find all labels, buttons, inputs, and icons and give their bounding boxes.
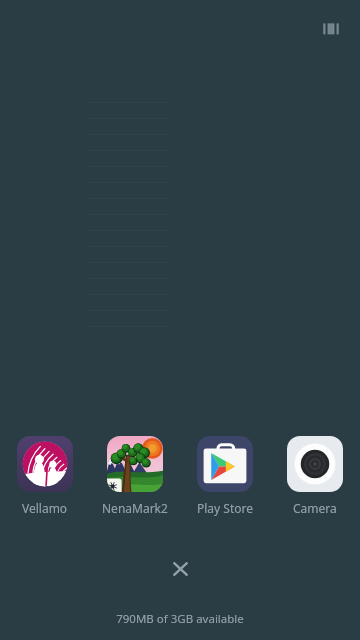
button[interactable]: Recent apps — [322, 22, 340, 36]
button[interactable]: NenaMark2 — [101, 436, 169, 516]
button[interactable]: Play Store — [191, 436, 259, 516]
staticText: 790MB of 3GB available — [0, 611, 360, 627]
staticText: Play Store — [197, 500, 253, 516]
button[interactable]: Clear all — [158, 547, 202, 591]
button[interactable]: Camera — [281, 436, 349, 516]
button[interactable]: Vellamo — [11, 436, 79, 516]
staticText: Camera — [293, 500, 337, 516]
staticText: Vellamo — [22, 500, 68, 516]
staticText: NenaMark2 — [102, 500, 168, 516]
